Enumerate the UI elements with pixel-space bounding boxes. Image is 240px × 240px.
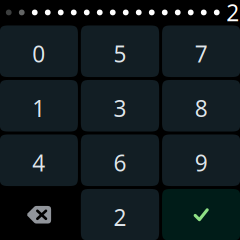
button[interactable]: 6	[81, 134, 159, 186]
staticText: 1	[32, 93, 45, 123]
button[interactable]: 9	[162, 134, 240, 186]
staticText: 2	[226, 0, 239, 27]
button[interactable]: 2	[81, 189, 159, 240]
button[interactable]: 1	[0, 80, 78, 132]
button[interactable]: 7	[162, 25, 240, 77]
button[interactable]: 5	[81, 25, 159, 77]
staticText: 9	[195, 148, 208, 178]
staticText: 0	[32, 39, 45, 69]
staticText: 6	[113, 148, 126, 178]
button[interactable]: 3	[81, 80, 159, 132]
button[interactable]: 4	[0, 134, 78, 186]
staticText: 4	[32, 148, 45, 178]
button[interactable]: 8	[162, 80, 240, 132]
staticText: 8	[195, 93, 208, 123]
staticText: 3	[113, 93, 126, 123]
staticText: 2	[113, 202, 126, 232]
staticText: 7	[195, 39, 208, 69]
button[interactable]: 0	[0, 25, 78, 77]
button[interactable]: Confirm	[162, 189, 240, 240]
staticText: 5	[113, 39, 126, 69]
button[interactable]: Delete	[0, 189, 78, 240]
